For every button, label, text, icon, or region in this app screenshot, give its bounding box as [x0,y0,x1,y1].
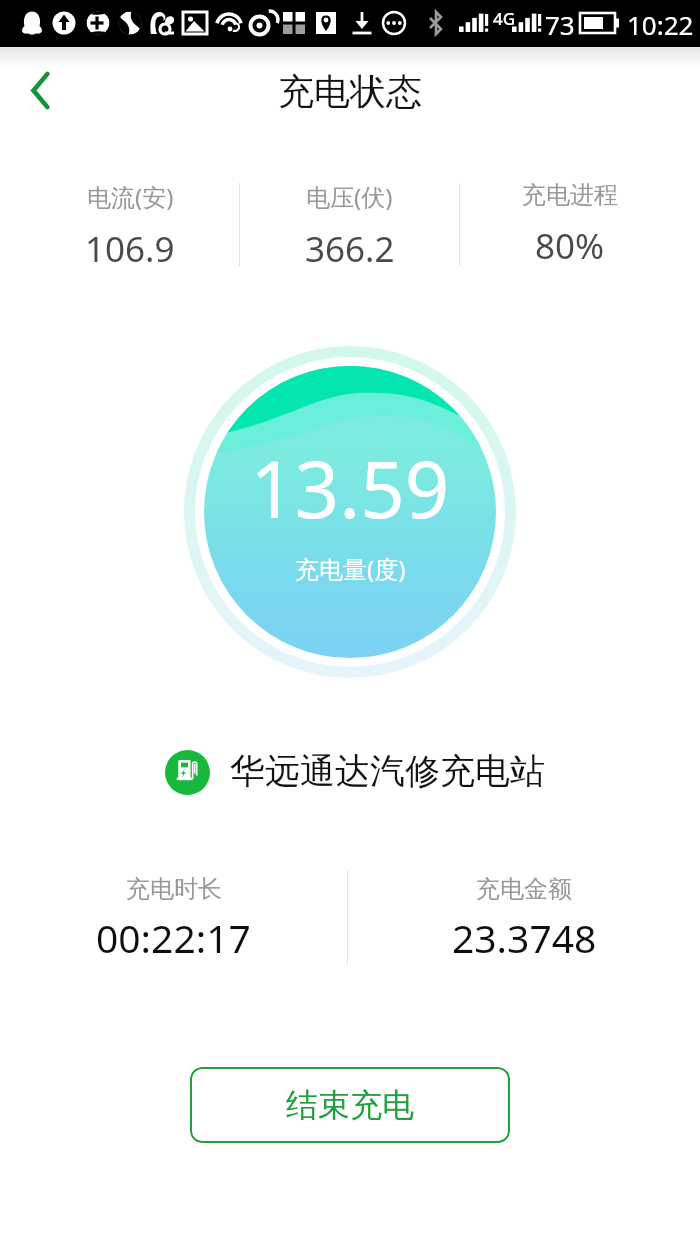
staticText: 106.9 [85,225,175,272]
staticText: 电流(安) [87,180,174,213]
staticText: 4G [493,7,516,30]
staticText: 366.2 [305,225,395,272]
staticText: 华远通达汽修充电站 [230,749,545,793]
staticText: 充电进程 [522,180,618,210]
staticText: 充电量(度) [295,552,406,585]
staticText: 电压(伏) [306,180,393,213]
button[interactable]: Back [9,57,75,123]
staticText: 23.3748 [452,911,597,964]
staticText: 结束充电 [286,1085,414,1125]
staticText: 73 [545,7,575,42]
staticText: 80% [535,222,605,270]
button[interactable]: 结束充电 [190,1067,510,1143]
staticText: 00:22:17 [96,911,251,964]
staticText: 充电时长 [126,874,222,904]
staticText: 充电状态 [278,69,422,114]
staticText: 10:22 [627,7,694,42]
staticText: 充电金额 [476,874,572,904]
staticText: 13.59 [250,435,450,541]
